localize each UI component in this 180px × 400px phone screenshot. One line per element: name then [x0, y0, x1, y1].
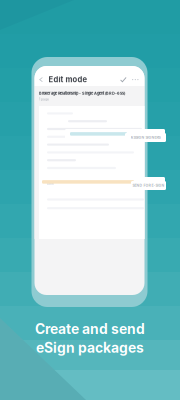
staticText: SEND FOR E-SIGN — [132, 183, 164, 188]
staticText: Create and send — [35, 320, 145, 337]
staticText: Edit mode — [49, 75, 88, 84]
staticText: eSign packages — [36, 339, 144, 356]
staticText: Date — [47, 181, 54, 185]
button[interactable]: SEND FOR E-SIGN — [131, 181, 166, 190]
staticText: ASSIGN SIGNERS — [130, 135, 160, 140]
button[interactable]: More options — [129, 76, 139, 83]
button[interactable]: ASSIGN SIGNERS — [125, 133, 166, 142]
staticText: Brokerage Relationship - Single Agent (B… — [39, 91, 125, 96]
button[interactable]: Done — [118, 75, 129, 85]
button[interactable]: Back — [39, 72, 49, 87]
staticText: 1 page — [39, 97, 49, 101]
